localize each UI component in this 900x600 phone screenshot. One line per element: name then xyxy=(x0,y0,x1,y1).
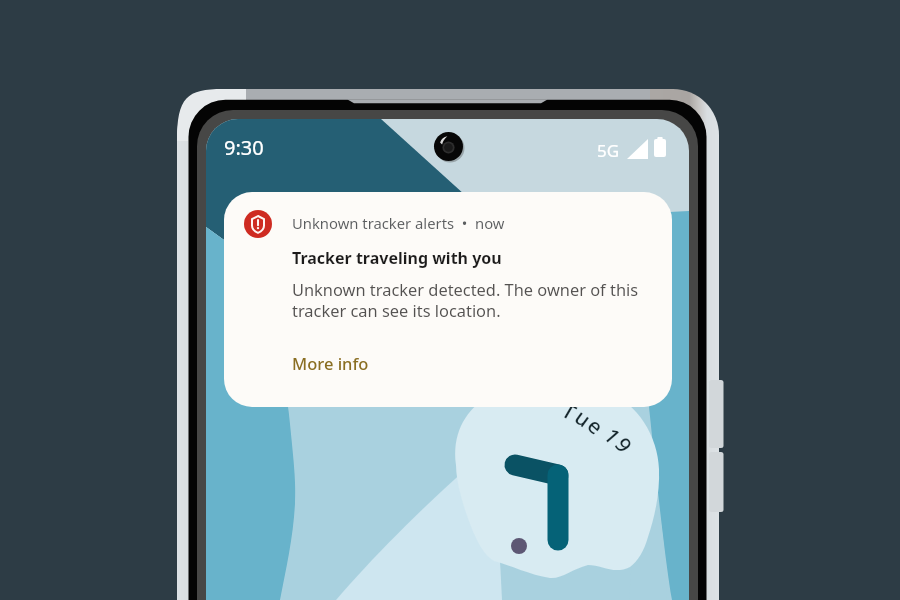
staticText: T xyxy=(557,396,581,427)
staticText: Unknown tracker detected. The owner of t… xyxy=(292,278,639,322)
staticText: 9 xyxy=(608,432,639,459)
button[interactable]: More info xyxy=(292,352,369,374)
staticText: Tracker traveling with you xyxy=(292,247,502,269)
staticText: u xyxy=(569,403,597,434)
button[interactable]: Unknown tracker alert xyxy=(224,192,672,407)
staticText: 9:30 xyxy=(224,134,264,161)
staticText: 1 xyxy=(597,422,628,451)
staticText: e xyxy=(581,411,610,442)
staticText: 5G xyxy=(597,139,620,162)
other: Unknown tracker alert xyxy=(244,210,272,238)
staticText: More info xyxy=(292,352,369,374)
staticText: Unknown tracker alerts • now xyxy=(292,213,505,233)
